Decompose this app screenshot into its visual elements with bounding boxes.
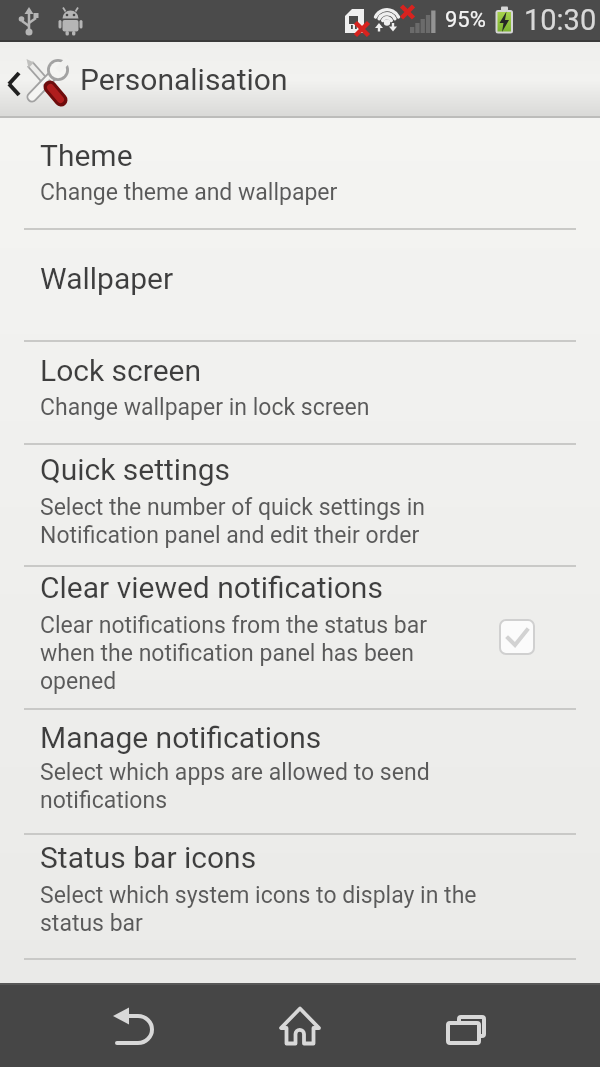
staticText: Clear notifications from the status bar … <box>40 612 428 695</box>
staticText: 95% <box>445 7 486 33</box>
staticText: Select the number of quick settings in N… <box>40 494 425 549</box>
staticText: Status bar icons <box>40 840 257 875</box>
staticText: Wallpaper <box>40 261 174 296</box>
staticText: Clear viewed notifications <box>40 570 383 605</box>
staticText: Quick settings <box>40 452 231 487</box>
staticText: Change theme and wallpaper <box>40 179 338 206</box>
staticText: Change wallpaper in lock screen <box>40 394 370 421</box>
staticText: Select which system icons to display in … <box>40 882 477 937</box>
staticText: 10:30 <box>524 3 597 37</box>
staticText: Personalisation <box>80 62 288 97</box>
staticText: Select which apps are allowed to send no… <box>40 759 430 814</box>
staticText: Manage notifications <box>40 720 322 755</box>
staticText: Theme <box>40 138 133 173</box>
staticText: Lock screen <box>40 353 202 388</box>
